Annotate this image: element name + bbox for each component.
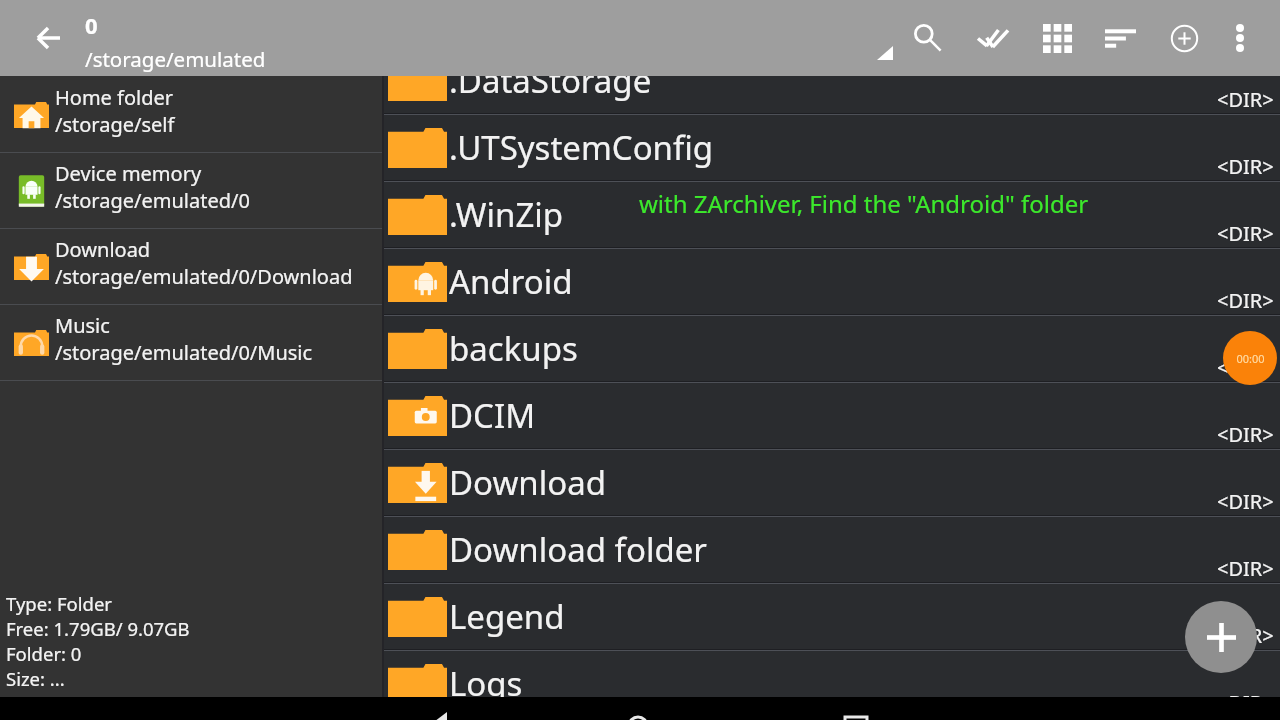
- staticText: .UTSystemConfig: [449, 125, 714, 170]
- button[interactable]: Create: [1154, 0, 1214, 76]
- staticText: <DIR>: [1217, 689, 1274, 697]
- button[interactable]: Back: [394, 697, 464, 720]
- button[interactable]: .UTSystemConfig: [384, 115, 1280, 180]
- button[interactable]: Logs: [384, 651, 1280, 697]
- staticText: 0: [85, 10, 98, 40]
- staticText: <DIR>: [1217, 287, 1274, 314]
- button[interactable]: Download: [0, 229, 382, 304]
- staticText: <DIR>: [1217, 421, 1274, 448]
- staticText: <DIR>: [1217, 555, 1274, 582]
- staticText: Size: ...: [6, 666, 65, 691]
- button[interactable]: backups: [384, 316, 1280, 381]
- staticText: Download: [55, 236, 151, 263]
- staticText: DCIM: [449, 393, 536, 438]
- button[interactable]: Search: [898, 0, 958, 76]
- button[interactable]: .WinZip: [384, 182, 1280, 247]
- staticText: <DIR>: [1217, 354, 1274, 381]
- staticText: Free: 1.79GB/ 9.07GB: [6, 616, 190, 641]
- button[interactable]: Recents: [816, 697, 886, 720]
- staticText: /storage/emulated/0: [55, 187, 250, 214]
- staticText: 00:00: [1236, 351, 1265, 366]
- staticText: <DIR>: [1217, 622, 1274, 649]
- button[interactable]: Legend: [384, 584, 1280, 649]
- staticText: Download: [449, 460, 607, 505]
- staticText: Folder: 0: [6, 641, 82, 666]
- staticText: <DIR>: [1217, 86, 1274, 113]
- button[interactable]: Home: [600, 697, 670, 720]
- button[interactable]: Android: [384, 249, 1280, 314]
- button[interactable]: More options: [1210, 0, 1270, 76]
- staticText: /storage/emulated: [85, 45, 266, 73]
- staticText: /storage/emulated/0/Download: [55, 263, 353, 290]
- button[interactable]: Download folder: [384, 517, 1280, 582]
- button[interactable]: Grid view: [1027, 0, 1087, 76]
- staticText: Logs: [449, 661, 523, 697]
- staticText: backups: [449, 326, 578, 371]
- staticText: Device memory: [55, 160, 202, 187]
- staticText: Download folder: [449, 527, 707, 572]
- staticText: Type: Folder: [6, 591, 112, 616]
- staticText: <DIR>: [1217, 488, 1274, 515]
- button[interactable]: Music: [0, 305, 382, 380]
- staticText: Android: [449, 259, 573, 304]
- button[interactable]: Back: [20, 0, 76, 76]
- button[interactable]: .DataStorage: [384, 76, 1280, 113]
- button[interactable]: Add: [1185, 601, 1257, 673]
- button[interactable]: Download: [384, 450, 1280, 515]
- button[interactable]: Select all: [963, 0, 1023, 76]
- staticText: <DIR>: [1217, 153, 1274, 180]
- staticText: .DataStorage: [449, 76, 652, 103]
- staticText: <DIR>: [1217, 220, 1274, 247]
- staticText: Music: [55, 312, 110, 339]
- button[interactable]: Home folder: [0, 77, 382, 152]
- staticText: Home folder: [55, 84, 174, 111]
- staticText: .WinZip: [449, 192, 564, 237]
- button[interactable]: Sort: [1090, 0, 1150, 76]
- button[interactable]: DCIM: [384, 383, 1280, 448]
- staticText: /storage/emulated/0/Music: [55, 339, 313, 366]
- staticText: /storage/self: [55, 111, 175, 138]
- button[interactable]: Device memory: [0, 153, 382, 228]
- staticText: Legend: [449, 594, 565, 639]
- staticText: with ZArchiver, Find the "Android" folde…: [639, 187, 1089, 220]
